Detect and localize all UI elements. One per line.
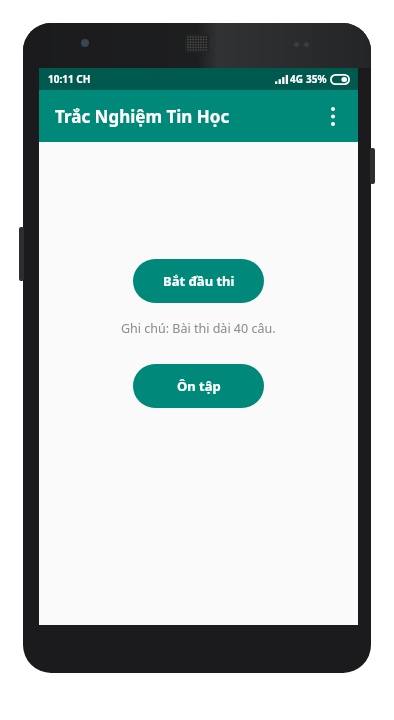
staticText: Bắt đầu thi: [163, 272, 235, 290]
button[interactable]: Ôn tập: [133, 364, 264, 408]
button[interactable]: More options: [312, 95, 354, 137]
staticText: Ôn tập: [177, 377, 221, 395]
staticText: Ghi chú: Bài thi dài 40 câu.: [121, 320, 276, 337]
staticText: Trắc Nghiệm Tin Học: [55, 105, 230, 128]
staticText: 4G: [290, 72, 303, 86]
button[interactable]: Bắt đầu thi: [133, 259, 264, 303]
staticText: 35%: [306, 72, 327, 86]
staticText: 10:11 CH: [48, 72, 91, 86]
